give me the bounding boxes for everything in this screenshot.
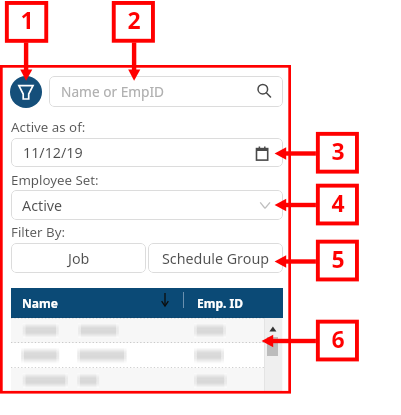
staticText: Active xyxy=(22,196,63,215)
staticText: Active as of: xyxy=(11,118,86,136)
staticText: 1 xyxy=(20,4,34,35)
staticText: 6 xyxy=(331,323,345,354)
staticText: Filter By: xyxy=(11,223,65,241)
button[interactable] xyxy=(11,318,283,343)
staticText: 5 xyxy=(331,243,345,274)
staticText: Emp. ID xyxy=(197,295,243,311)
button[interactable] xyxy=(11,368,283,393)
staticText: Name xyxy=(22,295,58,311)
staticText: Schedule Group xyxy=(162,249,270,268)
button[interactable]: Scroll xyxy=(265,318,282,391)
button[interactable]: Filter xyxy=(10,76,42,108)
button[interactable] xyxy=(11,343,283,368)
button[interactable]: Job xyxy=(11,243,146,273)
button[interactable]: Name xyxy=(11,288,283,318)
staticText: 4 xyxy=(331,187,345,218)
staticText: Name or EmpID xyxy=(61,82,165,101)
button[interactable]: Schedule Group xyxy=(148,243,283,273)
button[interactable]: 11/12/19 xyxy=(11,138,283,167)
staticText: Employee Set: xyxy=(11,171,99,189)
staticText: 3 xyxy=(331,135,345,166)
staticText: Job xyxy=(68,249,90,268)
staticText: 2 xyxy=(127,4,141,35)
staticText: 11/12/19 xyxy=(23,143,83,162)
button[interactable]: Active xyxy=(11,190,283,220)
button[interactable]: Name or EmpID xyxy=(49,76,283,107)
